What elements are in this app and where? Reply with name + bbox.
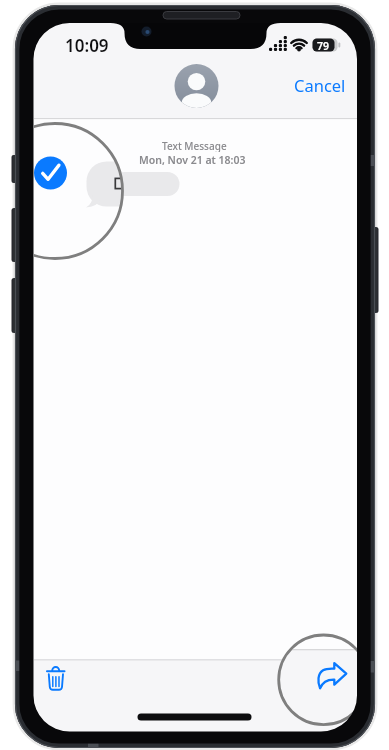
button[interactable]: [174, 64, 218, 108]
staticText: 10:09: [65, 34, 109, 56]
button[interactable]: [42, 662, 70, 690]
staticText: Cancel: [294, 74, 346, 96]
staticText: 79: [317, 39, 330, 51]
button[interactable]: Cancel: [290, 73, 350, 97]
button[interactable]: [312, 658, 350, 694]
staticText: Mon, Nov 21 at 18:03: [139, 153, 246, 166]
button[interactable]: [36, 156, 182, 198]
staticText: Text Message: [162, 139, 227, 152]
